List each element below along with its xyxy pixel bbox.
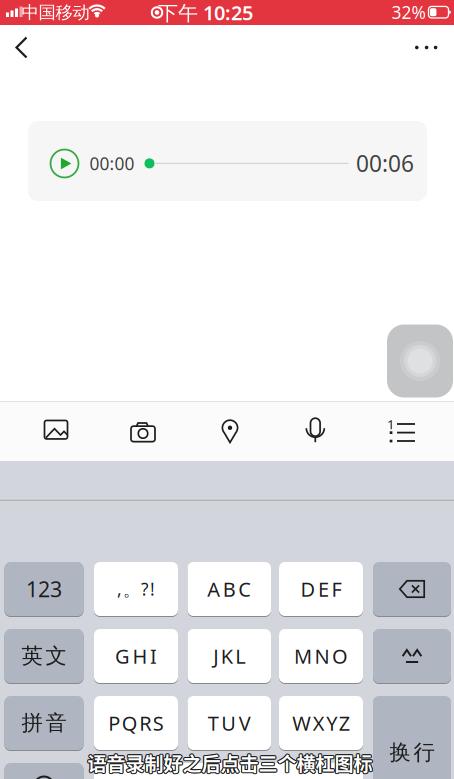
staticText: 语音录制好之后点击三个横杠图标 [87,750,372,778]
staticText: PQRS [108,710,164,736]
button[interactable]: 123 [4,561,83,616]
button[interactable]: JKL [187,628,271,683]
staticText: WXYZ [292,710,350,736]
button[interactable]: 表情 [4,762,83,779]
button[interactable]: Numbered list [387,417,417,443]
staticText: 中国移动 [21,2,89,23]
staticText: ABC [207,576,251,602]
button[interactable]: TUV [187,695,271,750]
staticText: 语音录制好之后点击三个横杠图标 [87,749,372,777]
staticText: 下午 10:25 [158,0,253,26]
button[interactable]: Camera [128,417,158,443]
button[interactable]: GHI [94,628,178,683]
button[interactable]: WXYZ [279,695,363,750]
staticText: 1 [387,415,395,433]
staticText: 123 [26,575,62,603]
button[interactable]: Voice input [300,416,330,444]
staticText: 拼音 [21,710,66,736]
button[interactable]: PQRS [94,695,178,750]
staticText: 语音录制好之后点击三个横杠图标 [88,748,373,776]
button[interactable]: More [411,33,441,62]
staticText: 语音录制好之后点击三个横杠图标 [88,749,373,777]
button[interactable]: MNO [279,628,363,683]
button[interactable]: Location [215,416,245,444]
button[interactable]: ,。?! [94,561,178,616]
button[interactable]: 换行 [373,695,451,779]
staticText: DEF [300,576,341,602]
staticText: 语音录制好之后点击三个横杠图标 [87,750,372,778]
staticText: MNO [294,643,348,669]
button[interactable]: 英文 [4,628,83,683]
button[interactable]: 空格 [94,762,363,779]
staticText: 换行 [389,739,434,766]
staticText: JKL [213,643,245,669]
staticText: 语音录制好之后点击三个横杠图标 [88,750,373,778]
staticText: GHI [115,643,157,669]
button[interactable]: DEF [279,561,363,616]
button[interactable]: Back [8,33,36,62]
staticText: ,。?! [117,577,155,600]
button[interactable]: 拼音 [4,695,83,750]
staticText: 00:06 [356,148,414,178]
staticText: 语音录制好之后点击三个横杠图标 [86,749,371,777]
button[interactable]: Photos [41,417,71,443]
button[interactable]: AssistiveTouch [387,324,453,397]
button[interactable]: ABC [187,561,271,616]
staticText: 00:00 [89,152,134,175]
staticText: 语音录制好之后点击三个横杠图标 [87,748,372,776]
staticText: TUV [208,710,251,736]
button[interactable]: Play [48,147,80,179]
staticText: 语音录制好之后点击三个横杠图标 [87,748,372,776]
staticText: 英文 [21,643,66,669]
button[interactable]: Delete [373,561,451,616]
button[interactable]: 表情 [373,628,451,683]
staticText: 32% [391,1,425,24]
